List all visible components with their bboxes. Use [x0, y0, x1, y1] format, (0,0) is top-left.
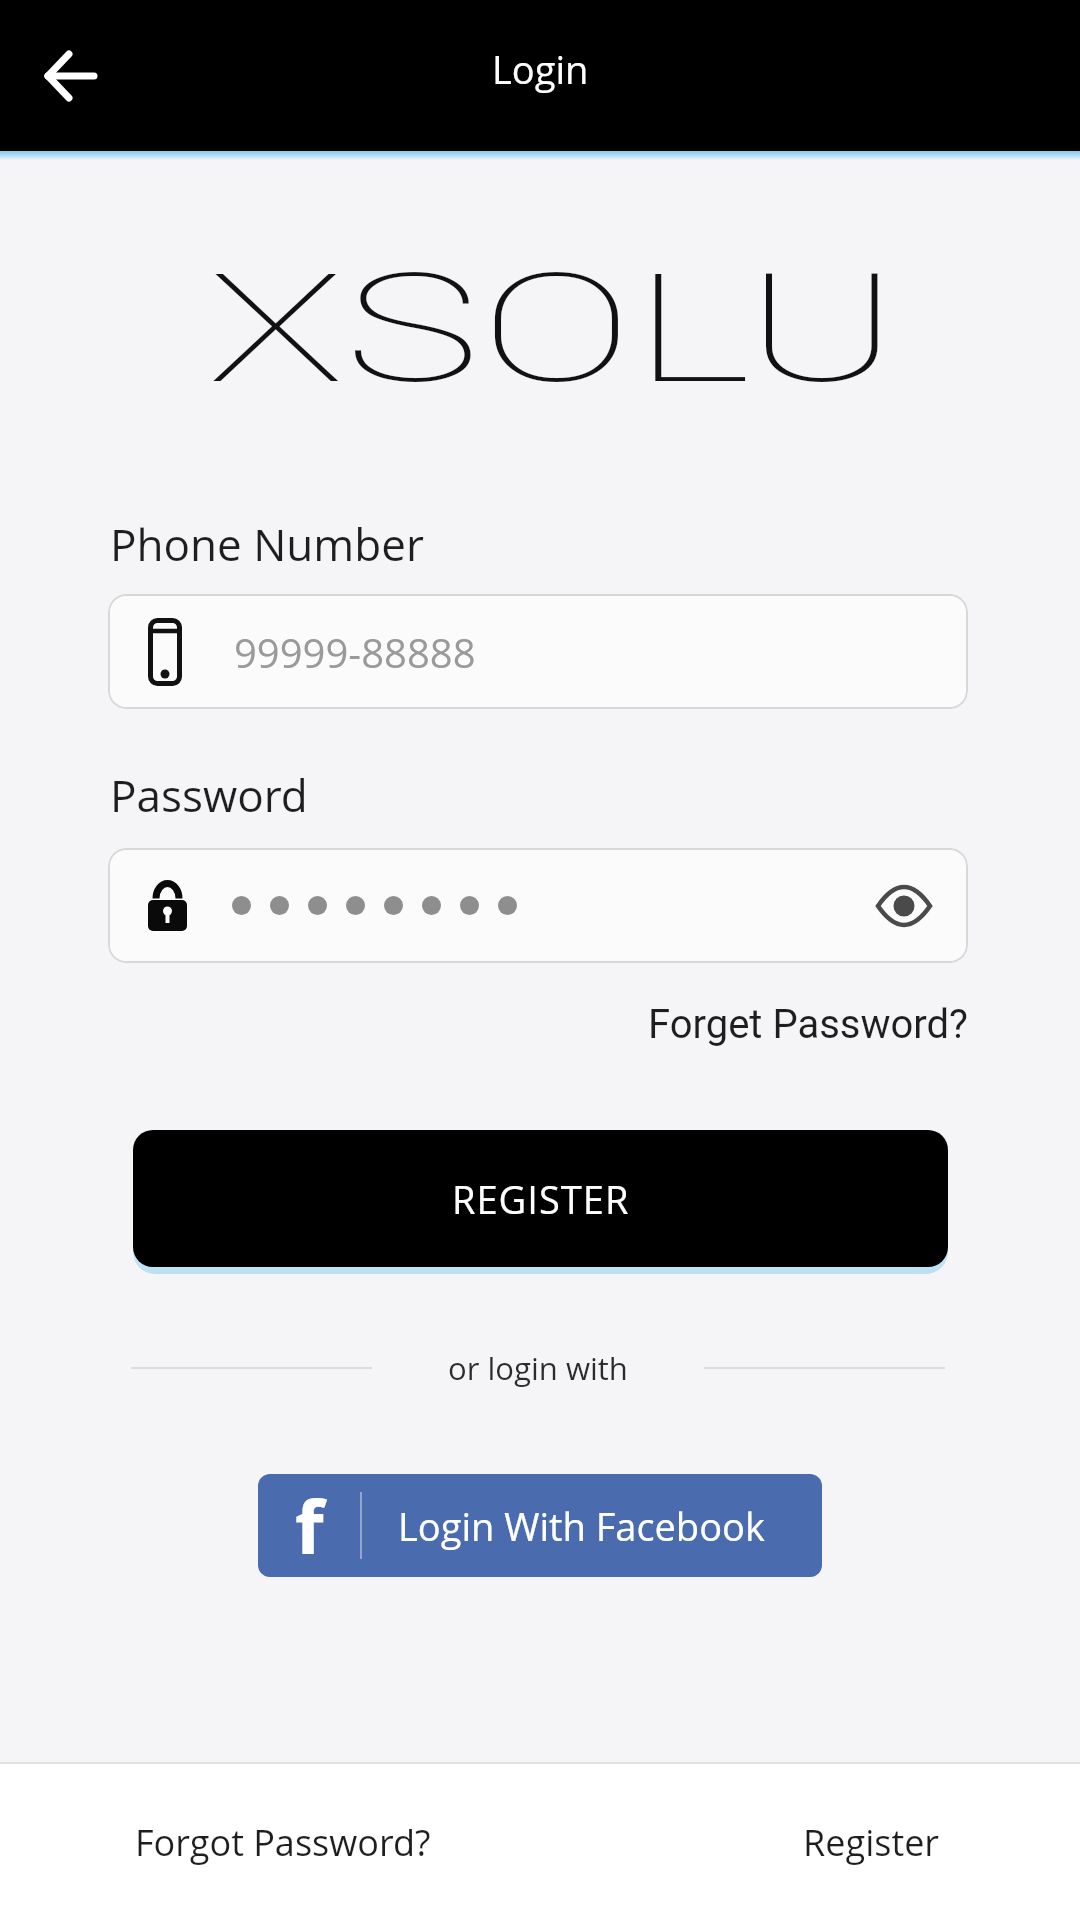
staticText: Register [803, 1818, 940, 1867]
button[interactable]: Register [803, 1818, 940, 1867]
button[interactable]: f [258, 1474, 822, 1577]
staticText: Forgot Password? [135, 1818, 431, 1867]
button[interactable] [108, 848, 968, 963]
staticText: REGISTER [452, 1173, 630, 1225]
button[interactable]: REGISTER [133, 1130, 948, 1267]
staticText: f [295, 1475, 324, 1576]
staticText: Forget Password? [648, 1001, 968, 1048]
staticText: Password [110, 765, 308, 825]
staticText: Login With Facebook [398, 1500, 765, 1552]
button[interactable]: 99999-88888 [108, 594, 968, 709]
button[interactable] [28, 34, 112, 118]
staticText: Phone Number [110, 514, 424, 574]
staticText: 99999-88888 [234, 625, 476, 679]
staticText: or login with [448, 1347, 628, 1389]
staticText: Login [492, 43, 589, 95]
button[interactable]: Forget Password? [648, 1001, 968, 1048]
button[interactable]: Forgot Password? [135, 1818, 431, 1867]
staticText: XSOLU [207, 242, 899, 418]
